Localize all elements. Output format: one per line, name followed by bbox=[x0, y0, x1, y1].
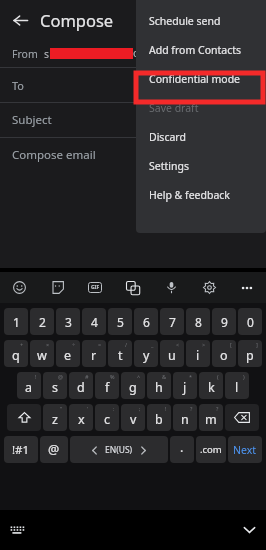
button[interactable]: ÷ bbox=[56, 340, 80, 367]
staticText: To bbox=[12, 78, 25, 93]
staticText: + bbox=[20, 341, 24, 348]
button[interactable]: 9 bbox=[212, 308, 236, 335]
button[interactable]: [ bbox=[212, 340, 236, 367]
button[interactable]: Subject bbox=[0, 103, 266, 137]
button[interactable]: + bbox=[4, 340, 28, 367]
staticText: * bbox=[189, 373, 193, 380]
button[interactable]: Next bbox=[228, 436, 262, 463]
button[interactable]: : bbox=[95, 404, 119, 431]
button[interactable]: Help & feedback bbox=[136, 180, 266, 209]
button[interactable]: .com bbox=[196, 436, 226, 463]
button[interactable]: ' bbox=[69, 404, 93, 431]
staticText: r bbox=[91, 347, 97, 364]
button[interactable]: Key bbox=[225, 404, 259, 431]
button[interactable]: Add from Contacts bbox=[136, 35, 266, 64]
button[interactable]: > bbox=[186, 340, 210, 367]
staticText: Confidential mode bbox=[149, 72, 241, 86]
staticText: @ bbox=[48, 441, 60, 458]
staticText: " bbox=[60, 405, 63, 412]
button[interactable]: 1 bbox=[4, 308, 28, 335]
staticText: . bbox=[180, 439, 184, 456]
staticText: @ bbox=[58, 373, 63, 380]
staticText: f bbox=[105, 379, 110, 396]
button[interactable]: Discard bbox=[136, 122, 266, 151]
staticText: EN(US) bbox=[105, 444, 133, 456]
button[interactable]: ! bbox=[17, 372, 41, 399]
staticText: s bbox=[52, 379, 58, 396]
button[interactable]: ( bbox=[199, 372, 223, 399]
button[interactable]: < bbox=[160, 340, 184, 367]
button[interactable]: × bbox=[30, 340, 54, 367]
button[interactable]: * bbox=[173, 372, 197, 399]
button[interactable]: 0 bbox=[238, 308, 262, 335]
button[interactable]: More options bbox=[228, 272, 266, 303]
button[interactable]: ? bbox=[173, 404, 197, 431]
staticText: 1 bbox=[13, 314, 20, 330]
staticText: Help & feedback bbox=[149, 188, 230, 202]
staticText: Subject bbox=[12, 112, 52, 128]
button[interactable]: ^ bbox=[121, 372, 145, 399]
button[interactable]: . bbox=[170, 436, 194, 463]
button[interactable]: Schedule send bbox=[136, 6, 266, 35]
button[interactable]: Settings bbox=[136, 151, 266, 180]
button[interactable]: Switch keyboard bbox=[4, 517, 30, 543]
button[interactable]: Stickers bbox=[38, 272, 76, 303]
button[interactable]: _ bbox=[134, 340, 158, 367]
button[interactable]: Confidential mode bbox=[136, 64, 266, 93]
button[interactable]: 5 bbox=[108, 308, 132, 335]
staticText: ( bbox=[217, 373, 219, 380]
button[interactable]: Emoji bbox=[0, 272, 38, 303]
button[interactable]: 8 bbox=[186, 308, 210, 335]
staticText: ; bbox=[139, 405, 141, 412]
button[interactable]: Save draft bbox=[136, 93, 266, 122]
staticText: t bbox=[118, 347, 123, 364]
staticText: d bbox=[77, 379, 85, 396]
staticText: or bbox=[133, 46, 144, 60]
button[interactable]: = bbox=[82, 340, 106, 367]
button[interactable]: Compose email bbox=[0, 138, 266, 172]
button[interactable]: 4 bbox=[82, 308, 106, 335]
button[interactable]: GIF bbox=[76, 272, 114, 303]
staticText: Discard bbox=[149, 130, 186, 144]
button[interactable]: @ bbox=[43, 372, 67, 399]
button[interactable]: Back bbox=[0, 0, 40, 40]
button[interactable]: ! bbox=[147, 404, 171, 431]
button[interactable]: To bbox=[0, 68, 266, 102]
button[interactable]: # bbox=[69, 372, 93, 399]
staticText: !#1 bbox=[12, 442, 30, 458]
button[interactable]: Space bbox=[70, 436, 168, 463]
staticText: Schedule send bbox=[149, 14, 221, 28]
button[interactable]: 3 bbox=[56, 308, 80, 335]
button[interactable]: 7 bbox=[160, 308, 184, 335]
button[interactable]: % bbox=[95, 372, 119, 399]
staticText: Save draft bbox=[149, 101, 199, 115]
button[interactable]: ) bbox=[225, 372, 249, 399]
button[interactable]: 6 bbox=[134, 308, 158, 335]
button[interactable]: ; bbox=[121, 404, 145, 431]
staticText: < bbox=[176, 341, 180, 348]
button[interactable]: & bbox=[147, 372, 171, 399]
staticText: [ bbox=[230, 341, 232, 348]
button[interactable]: ] bbox=[238, 340, 262, 367]
staticText: p bbox=[246, 347, 254, 364]
button[interactable]: / bbox=[108, 340, 132, 367]
button[interactable]: Translate bbox=[114, 272, 152, 303]
staticText: ^ bbox=[137, 373, 141, 380]
staticText: c bbox=[104, 411, 111, 428]
button[interactable]: ? bbox=[199, 404, 223, 431]
button[interactable]: 2 bbox=[30, 308, 54, 335]
button[interactable]: Voice input bbox=[152, 272, 190, 303]
staticText: 0 bbox=[247, 314, 254, 330]
button[interactable]: Hide keyboard bbox=[236, 517, 262, 543]
staticText: ) bbox=[243, 373, 245, 380]
button[interactable]: " bbox=[43, 404, 67, 431]
button[interactable]: @ bbox=[40, 436, 68, 463]
button[interactable]: Key bbox=[7, 404, 41, 431]
button[interactable]: !#1 bbox=[4, 436, 38, 463]
staticText: _ bbox=[151, 341, 154, 348]
staticText: m bbox=[205, 411, 217, 428]
staticText: e bbox=[64, 347, 72, 364]
staticText: / bbox=[125, 341, 128, 348]
staticText: 3 bbox=[65, 314, 72, 330]
button[interactable]: Settings bbox=[190, 272, 228, 303]
